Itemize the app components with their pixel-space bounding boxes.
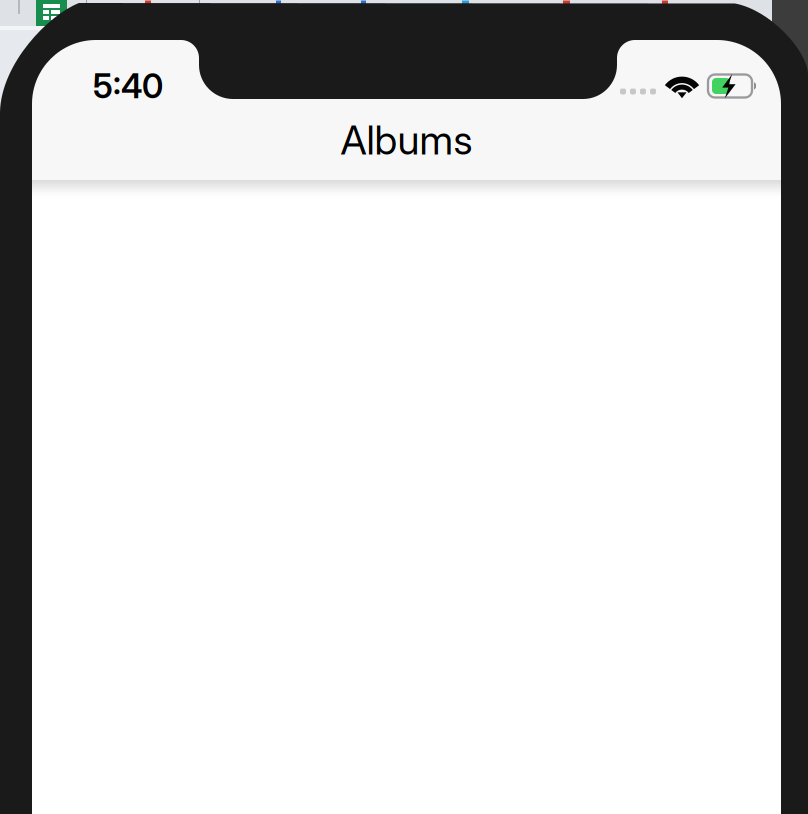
staticText: 5:40: [93, 66, 163, 106]
staticText: Albums: [340, 116, 472, 164]
